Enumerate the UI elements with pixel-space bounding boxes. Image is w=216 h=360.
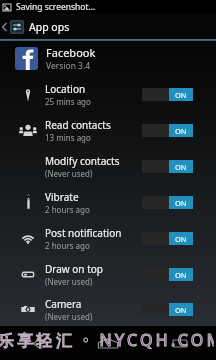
button[interactable]: Toggle permission [142,124,193,137]
button[interactable]: Recent apps [144,326,216,360]
button[interactable]: Modify contacts [0,148,216,184]
staticText: ON [175,270,187,280]
button[interactable]: Home [72,326,144,360]
staticText: Post notification [45,226,122,240]
staticText: Draw on top [45,262,103,276]
button[interactable]: Navigate up [0,14,24,39]
staticText: Vibrate [45,190,79,204]
button[interactable]: Read contacts [0,112,216,148]
staticText: Read contacts [45,118,111,132]
button[interactable]: Vibrate [0,184,216,220]
button[interactable]: Location [0,76,216,112]
staticText: ON [175,90,187,100]
button[interactable]: Draw on top [0,256,216,292]
staticText: ON [175,234,187,244]
staticText: (Never used) [45,276,93,287]
staticText: 13 mins ago [45,132,91,143]
button[interactable]: Toggle permission [142,196,193,209]
staticText: ON [175,198,187,208]
staticText: Saving screenshot… [16,1,96,13]
button[interactable]: Camera [0,292,216,326]
staticText: App ops [29,20,70,34]
staticText: 2 hours ago [45,240,90,251]
button[interactable]: Toggle permission [142,160,193,173]
button[interactable]: Post notification [0,220,216,256]
staticText: ON [175,305,187,315]
button[interactable]: Toggle permission [142,232,193,245]
button[interactable]: Back [0,326,72,360]
staticText: Camera [45,297,82,311]
staticText: 乐享轻汇 • NYCQH.COM [0,329,214,351]
staticText: (Never used) [45,311,93,322]
button[interactable]: Toggle permission [142,268,193,281]
staticText: Modify contacts [45,154,120,168]
staticText: ON [175,126,187,136]
button[interactable]: Toggle permission [142,303,193,316]
button[interactable]: Toggle permission [142,88,193,101]
staticText: 2 hours ago [45,204,90,215]
staticText: (Never used) [45,168,93,179]
staticText: Version 3.4 [46,60,91,72]
staticText: Location [45,82,86,96]
staticText: 25 mins ago [45,96,91,107]
staticText: Facebook [46,45,96,60]
staticText: ON [175,162,187,172]
